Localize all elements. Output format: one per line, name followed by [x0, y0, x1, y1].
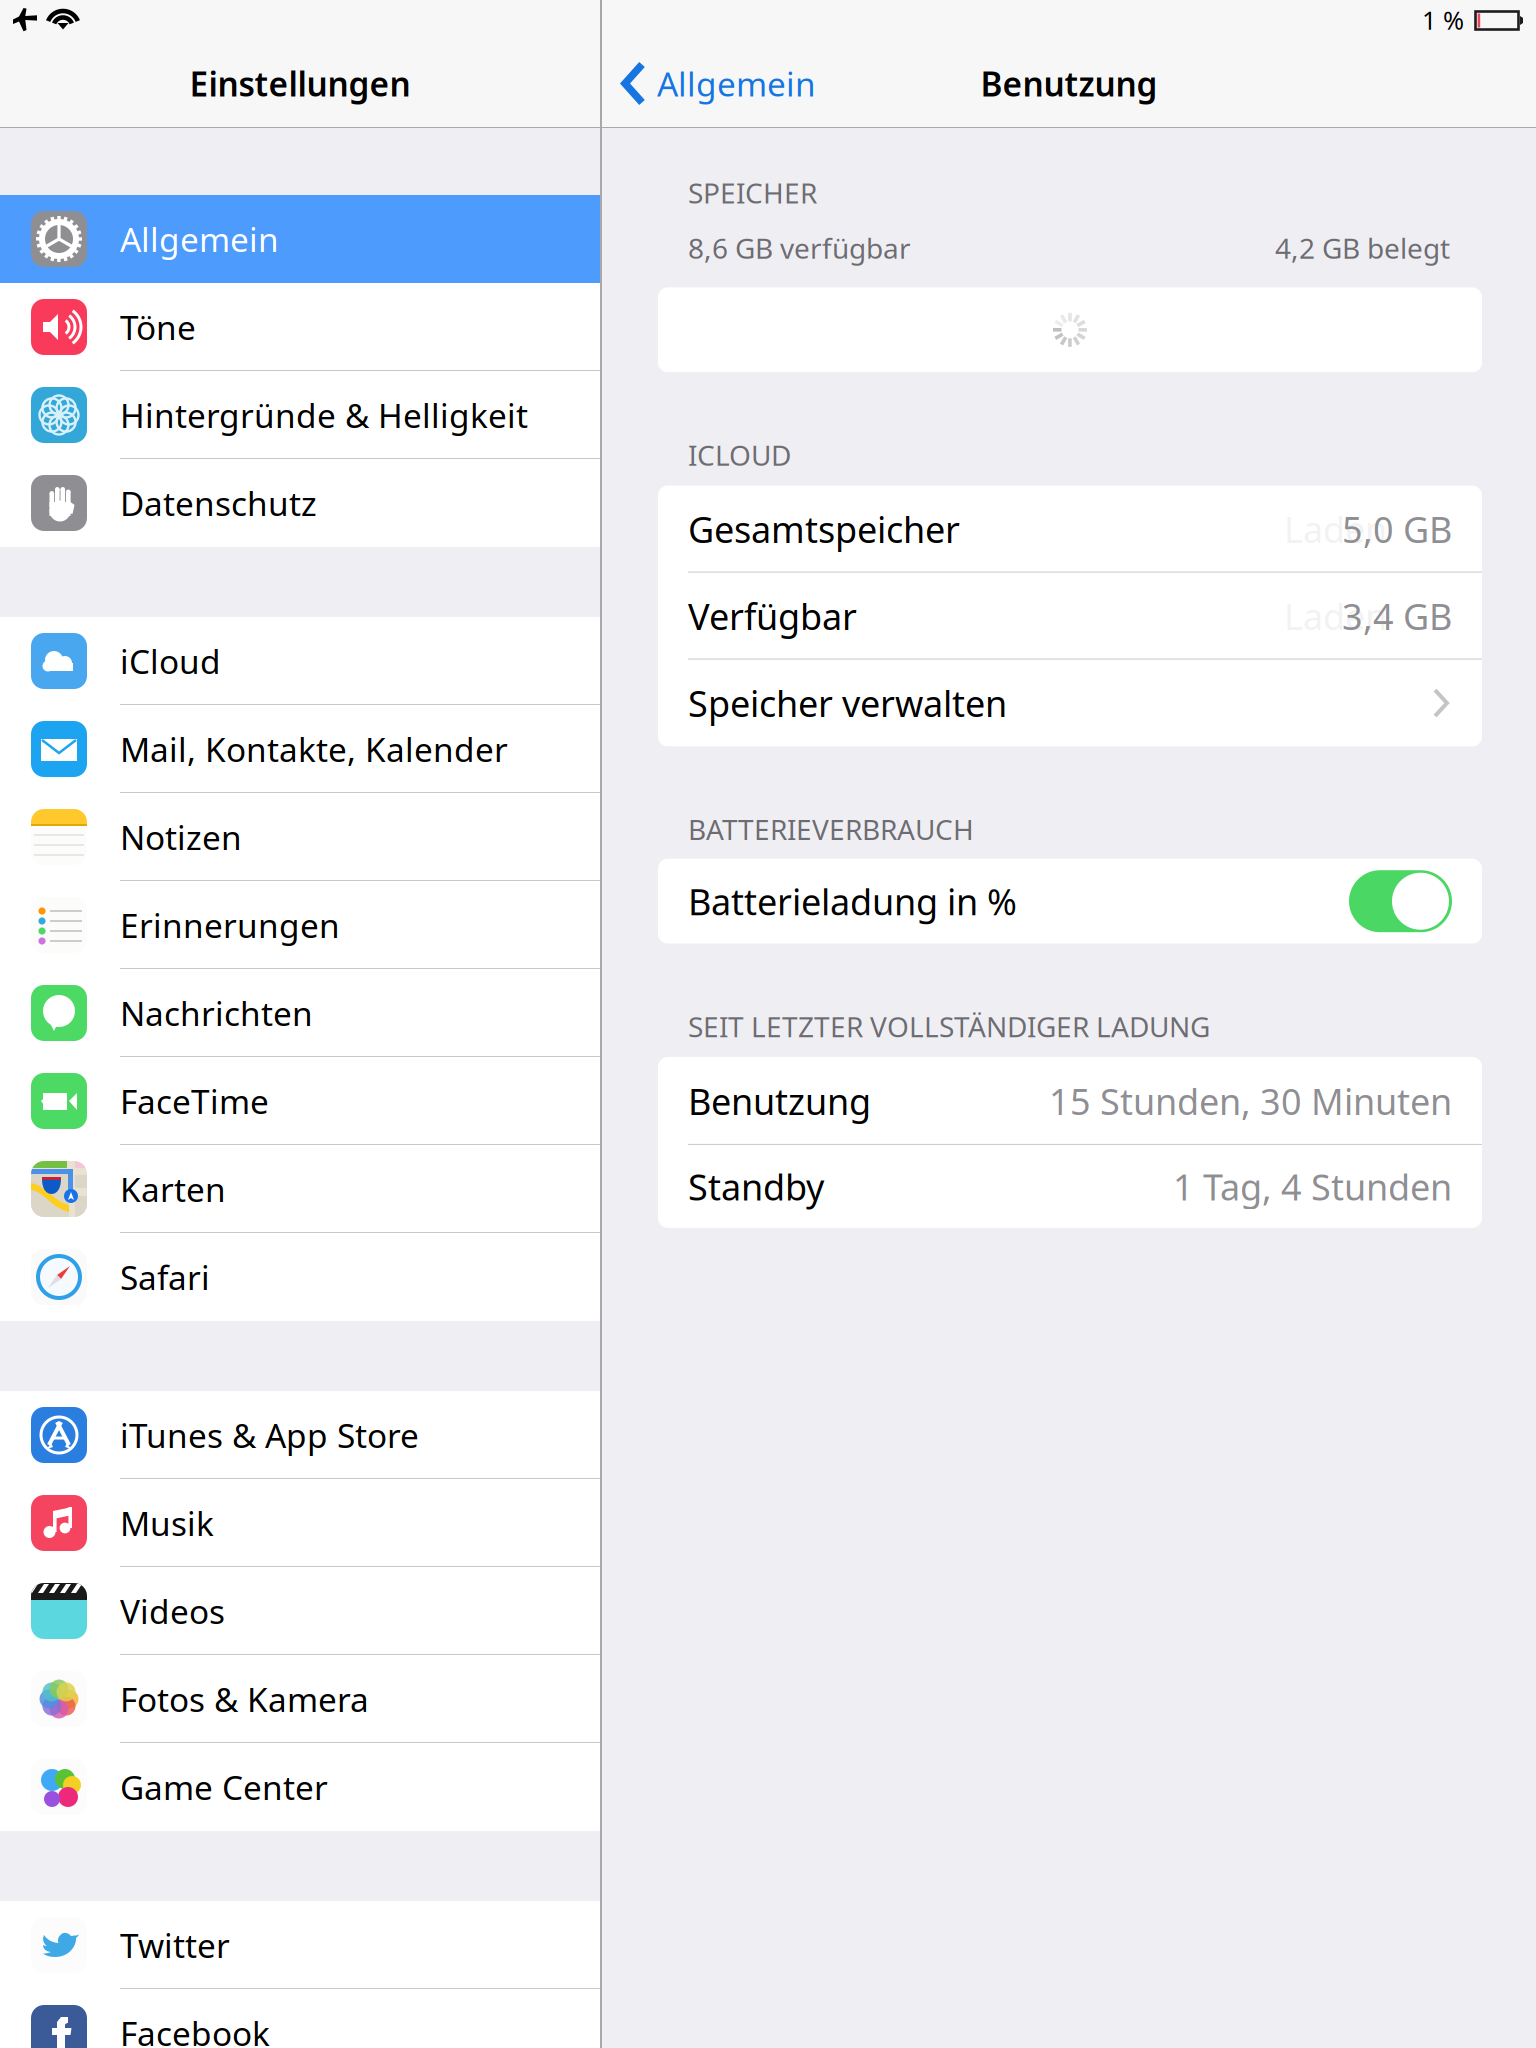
staticText: Speicher verwalten: [688, 679, 1007, 727]
staticText: Karten: [120, 1167, 226, 1211]
button[interactable]: Mail, Kontakte, Kalender: [0, 705, 600, 793]
staticText: SPEICHER: [688, 174, 817, 211]
staticText: Standby: [688, 1162, 824, 1210]
button[interactable]: Game Center: [0, 1743, 600, 1831]
staticText: Erinnerungen: [120, 903, 340, 947]
staticText: BATTERIEVERBRAUCH: [688, 810, 974, 848]
button[interactable]: Musik: [0, 1479, 600, 1567]
staticText: 8,6 GB verfügbar: [688, 229, 911, 266]
staticText: Datenschutz: [120, 481, 317, 525]
staticText: 1 Tag, 4 Stunden: [1173, 1162, 1452, 1210]
button[interactable]: Facebook: [0, 1989, 600, 2048]
staticText: 4,2 GB belegt: [1275, 229, 1450, 266]
button[interactable]: Karten: [0, 1145, 600, 1233]
staticText: iCloud: [120, 639, 221, 683]
staticText: Fotos & Kamera: [120, 1677, 369, 1721]
staticText: Benutzung: [980, 61, 1157, 106]
button[interactable]: Batterieladung in Prozent: [1349, 870, 1452, 932]
button[interactable]: Twitter: [0, 1901, 600, 1989]
staticText: Nachrichten: [120, 991, 313, 1035]
staticText: Notizen: [120, 815, 242, 859]
button[interactable]: iCloud: [0, 617, 600, 705]
staticText: Videos: [120, 1589, 225, 1633]
staticText: Laden: [1284, 592, 1387, 640]
staticText: SEIT LETZTER VOLLSTÄNDIGER LADUNG: [688, 1008, 1210, 1045]
button[interactable]: Nachrichten: [0, 969, 600, 1057]
button[interactable]: Allgemein: [0, 195, 600, 283]
staticText: Verfügbar: [688, 592, 857, 640]
staticText: iTunes & App Store: [120, 1413, 419, 1457]
button[interactable]: Töne: [0, 283, 600, 371]
staticText: Allgemein: [120, 217, 279, 261]
staticText: Twitter: [120, 1923, 230, 1967]
staticText: Benutzung: [688, 1077, 871, 1125]
button[interactable]: Datenschutz: [0, 459, 600, 547]
staticText: Batterieladung in %: [688, 877, 1017, 925]
staticText: Musik: [120, 1501, 214, 1545]
button[interactable]: Hintergründe & Helligkeit: [0, 371, 600, 459]
staticText: Laden: [1284, 505, 1387, 553]
staticText: ICLOUD: [688, 436, 791, 474]
button[interactable]: Speicher verwalten: [658, 659, 1482, 746]
button[interactable]: FaceTime: [0, 1057, 600, 1145]
staticText: 15 Stunden, 30 Minuten: [1049, 1077, 1452, 1125]
staticText: Töne: [120, 305, 196, 349]
staticText: Einstellungen: [189, 61, 410, 106]
staticText: Gesamtspeicher: [688, 505, 960, 553]
button[interactable]: Allgemein: [602, 40, 816, 127]
button[interactable]: iTunes & App Store: [0, 1391, 600, 1479]
staticText: 5,0 GB: [1342, 505, 1452, 553]
button[interactable]: Notizen: [0, 793, 600, 881]
button[interactable]: Erinnerungen: [0, 881, 600, 969]
button[interactable]: Fotos & Kamera: [0, 1655, 600, 1743]
staticText: 3,4 GB: [1342, 592, 1452, 640]
staticText: 1 %: [1422, 3, 1464, 37]
staticText: Hintergründe & Helligkeit: [120, 393, 528, 437]
staticText: Allgemein: [657, 61, 816, 106]
staticText: FaceTime: [120, 1079, 269, 1123]
staticText: Mail, Kontakte, Kalender: [120, 727, 508, 771]
staticText: Safari: [120, 1255, 210, 1299]
staticText: Game Center: [120, 1765, 328, 1809]
staticText: Facebook: [120, 2011, 270, 2048]
button[interactable]: Safari: [0, 1233, 600, 1321]
button[interactable]: Videos: [0, 1567, 600, 1655]
